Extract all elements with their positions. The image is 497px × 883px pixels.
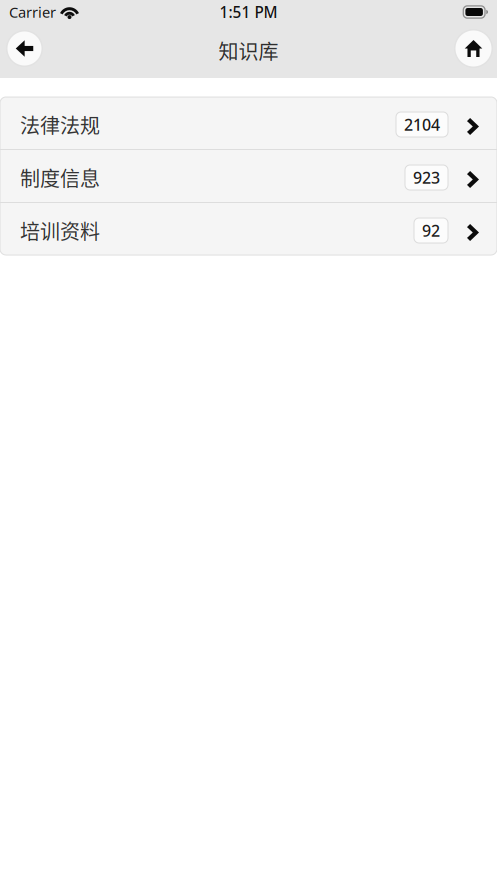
staticText: 2104 bbox=[404, 114, 440, 135]
staticText: 92 bbox=[422, 220, 440, 241]
button[interactable]: 制度信息 bbox=[0, 150, 497, 203]
staticText: 知识库 bbox=[218, 36, 278, 65]
button[interactable]: 培训资料 bbox=[0, 203, 497, 255]
staticText: 培训资料 bbox=[20, 216, 100, 245]
staticText: 法律法规 bbox=[20, 110, 100, 139]
button[interactable]: Back bbox=[6, 30, 43, 67]
button[interactable]: 法律法规 bbox=[0, 97, 497, 150]
button[interactable]: Home bbox=[454, 29, 493, 68]
staticText: 923 bbox=[413, 167, 440, 188]
staticText: 制度信息 bbox=[20, 163, 100, 192]
staticText: Carrier bbox=[9, 2, 56, 22]
staticText: 1:51 PM bbox=[219, 2, 277, 22]
